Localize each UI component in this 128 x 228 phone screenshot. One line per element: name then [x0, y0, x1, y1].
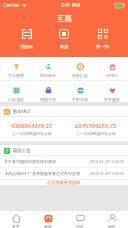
button[interactable]: 商城	[32, 211, 64, 228]
staticText: 消息	[76, 224, 84, 228]
staticText: 付款码	[20, 44, 33, 49]
staticText: 【热点项目】广东省最新备案正式开启办理	[4, 171, 80, 176]
other: 收款	[59, 29, 69, 39]
staticText: 信用卡	[106, 73, 118, 78]
staticText: 理财产品	[40, 97, 56, 102]
staticText: 2:41 PM	[61, 2, 80, 9]
staticText: 生活缴费	[8, 73, 24, 78]
staticText: 2018-01-30 13:30:30	[90, 171, 124, 176]
button[interactable]: 首页	[0, 211, 32, 228]
button[interactable]: 4369043479.27	[0, 117, 64, 141]
staticText: 我的账单	[40, 73, 56, 78]
button[interactable]: 关于春节期间放假安排的通知	[0, 156, 128, 167]
staticText: Carrier	[3, 2, 20, 9]
button[interactable]: 转账汇款	[64, 57, 96, 80]
button[interactable]: 生活缴费	[0, 57, 32, 80]
staticText: 互惠	[57, 14, 72, 23]
staticText: 扫一扫	[96, 44, 109, 49]
button[interactable]: 扫一扫	[89, 26, 116, 49]
button[interactable]: 我的账单	[32, 57, 64, 80]
button[interactable]: 更多服务	[96, 81, 128, 102]
button[interactable]: 公益捐款	[0, 81, 32, 102]
other: 扫一扫	[98, 29, 108, 39]
staticText: 上一年度销售额同比金额	[76, 132, 116, 137]
staticText: 转账汇款	[72, 73, 88, 78]
button[interactable]: 2675799055.72	[64, 117, 128, 141]
staticText: 公益捐款	[8, 97, 24, 102]
button[interactable]: 消息	[64, 211, 96, 228]
button[interactable]: 付款码	[13, 26, 40, 49]
staticText: 首页	[12, 224, 20, 228]
staticText: 2018-01-30 13:30:30	[90, 159, 124, 164]
staticText: 手机充值	[72, 97, 88, 102]
button[interactable]: 理财产品	[32, 81, 64, 102]
staticText: 我的	[108, 224, 116, 228]
staticText: 上一年度销售额同比金额	[12, 132, 52, 137]
staticText: 收款	[60, 44, 69, 49]
button[interactable]: 收款	[52, 26, 76, 49]
staticText: 2675799055.72	[75, 122, 117, 130]
other: 付款码	[22, 29, 32, 39]
button[interactable]: 手机充值	[64, 81, 96, 102]
button[interactable]: 【热点项目】广东省最新备案正式开启办理	[0, 168, 128, 179]
staticText: 更多服务	[104, 97, 120, 102]
staticText: 4369043479.27	[11, 122, 53, 130]
staticText: 最新公告	[13, 148, 31, 154]
button[interactable]: 点击查看更多内容	[0, 180, 128, 185]
staticText: 点击查看更多内容	[47, 180, 81, 185]
staticText: 商城	[44, 224, 52, 228]
staticText: 关于春节期间放假安排的通知	[4, 159, 56, 164]
staticText: 数据统计	[13, 109, 31, 115]
button[interactable]: 我的	[96, 211, 128, 228]
button[interactable]: 信用卡	[96, 57, 128, 80]
